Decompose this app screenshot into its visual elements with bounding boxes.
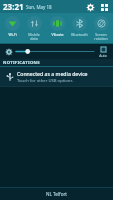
staticText: Auto bbox=[99, 53, 107, 58]
staticText: NOTIFICATIONS bbox=[3, 60, 40, 66]
button[interactable]: Screen rotation bbox=[91, 16, 111, 41]
button[interactable]: Auto bbox=[96, 46, 110, 58]
button[interactable]: Settings bbox=[84, 1, 96, 13]
button[interactable]: Vibrate bbox=[47, 16, 67, 37]
staticText: Vibrate bbox=[51, 32, 64, 37]
staticText: 23:21 bbox=[3, 1, 24, 12]
staticText: Touch for other USB options bbox=[17, 78, 73, 84]
staticText: Screen rotation bbox=[94, 32, 108, 41]
button[interactable]: Mobile data bbox=[24, 16, 44, 41]
button[interactable]: Bluetooth bbox=[69, 16, 89, 37]
staticText: NL Telfort bbox=[46, 191, 68, 197]
staticText: Connected as a media device bbox=[17, 70, 88, 77]
staticText: Sun, May 18 bbox=[26, 4, 52, 10]
button[interactable]: Wi-Fi bbox=[2, 16, 22, 37]
staticText: Wi-Fi bbox=[8, 32, 17, 37]
button[interactable]: Edit quick settings bbox=[98, 1, 110, 13]
staticText: Mobile data bbox=[28, 32, 40, 41]
button[interactable]: Connected as a media device bbox=[0, 67, 113, 86]
button[interactable]: Brightness settings bbox=[3, 46, 14, 57]
staticText: Bluetooth bbox=[71, 32, 88, 37]
button[interactable]: Brightness bbox=[16, 46, 94, 57]
